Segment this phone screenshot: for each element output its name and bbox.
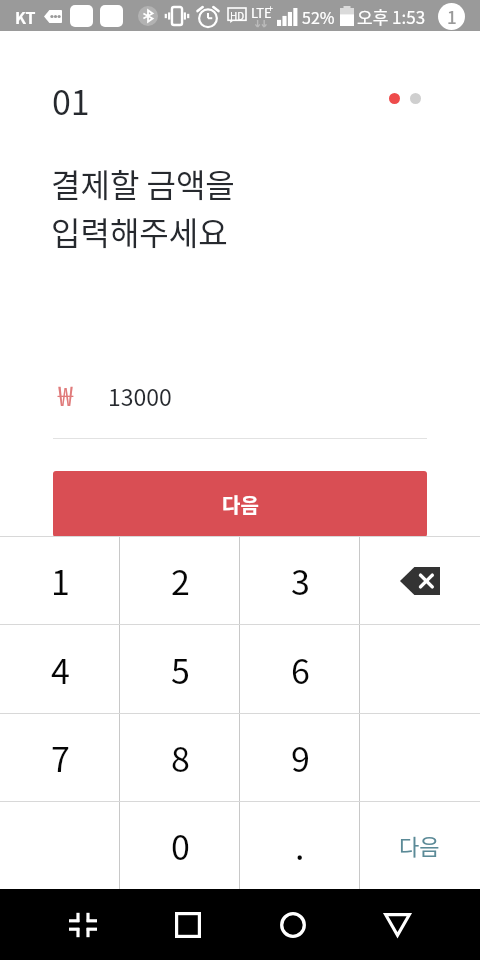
other: Backspace	[400, 567, 440, 595]
staticText: 0	[171, 821, 190, 870]
staticText: 8	[171, 733, 190, 782]
button[interactable]: 4	[0, 625, 120, 713]
staticText: 결제할 금액을	[51, 160, 235, 206]
staticText: 1	[51, 556, 70, 605]
staticText: 1	[447, 4, 457, 29]
button[interactable]: .	[240, 802, 360, 889]
staticText: 오후 1:53	[357, 4, 426, 29]
staticText: 3	[291, 556, 310, 605]
button[interactable]: 1	[0, 537, 120, 624]
button[interactable]: Home	[240, 889, 345, 960]
staticText: 4	[51, 645, 70, 694]
staticText: 입력해주세요	[51, 208, 228, 254]
staticText: 9	[291, 733, 310, 782]
staticText: 다음	[399, 829, 440, 861]
staticText: +	[268, 2, 273, 15]
staticText: 6	[291, 645, 310, 694]
button[interactable]	[0, 802, 120, 889]
button[interactable]: 다음	[360, 802, 480, 889]
button[interactable]: 8	[120, 714, 240, 801]
staticText: HD	[230, 8, 245, 22]
button[interactable]: 2	[120, 537, 240, 624]
button[interactable]: 0	[120, 802, 240, 889]
staticText: ₩	[58, 375, 73, 414]
staticText: LTE	[251, 3, 272, 22]
button[interactable]: 다음	[53, 471, 427, 537]
button[interactable]: 9	[240, 714, 360, 801]
staticText: .	[295, 821, 305, 870]
staticText: KT	[15, 5, 36, 28]
staticText: 2	[171, 556, 190, 605]
button[interactable]: Back	[345, 889, 450, 960]
staticText: 01	[52, 76, 90, 125]
button[interactable]: Backspace	[360, 537, 480, 624]
staticText: 5	[171, 645, 190, 694]
button[interactable]: 5	[120, 625, 240, 713]
button[interactable]: 6	[240, 625, 360, 713]
staticText: 13000	[108, 379, 172, 412]
button[interactable]: Minimize	[30, 889, 135, 960]
staticText: 다음	[222, 490, 259, 519]
button[interactable]: 7	[0, 714, 120, 801]
button[interactable]: Recents	[135, 889, 240, 960]
staticText: 52%	[302, 5, 335, 28]
staticText: 7	[51, 733, 70, 782]
button[interactable]: 3	[240, 537, 360, 624]
